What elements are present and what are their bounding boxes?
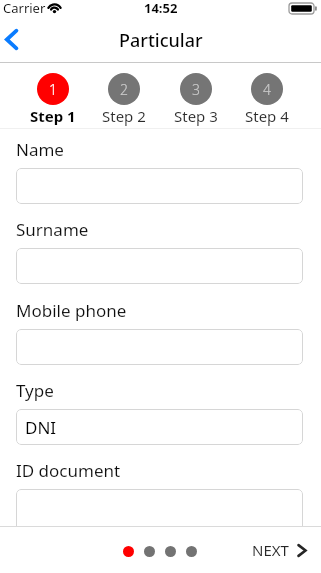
staticText: Type [16, 379, 54, 402]
staticText: NEXT [252, 540, 289, 560]
button[interactable]: 1 [30, 73, 76, 126]
button[interactable]: Go to step 3 [165, 546, 176, 557]
button[interactable]: NEXT [252, 540, 321, 560]
button[interactable]: 4 [245, 73, 289, 126]
staticText: Step 1 [30, 106, 76, 126]
staticText: DNI [25, 416, 57, 439]
staticText: Carrier [3, 0, 46, 17]
staticText: Surname [16, 218, 89, 241]
button[interactable]: DNI [16, 409, 303, 445]
button[interactable] [16, 168, 303, 204]
staticText: Mobile phone [16, 299, 127, 322]
staticText: Step 3 [174, 106, 218, 126]
button[interactable]: Go to step 1 [123, 546, 134, 557]
staticText: 2 [120, 80, 128, 99]
button[interactable] [16, 248, 303, 284]
staticText: Step 2 [102, 106, 146, 126]
button[interactable]: Back [0, 20, 44, 63]
staticText: 1 [49, 80, 57, 99]
staticText: Step 4 [245, 106, 289, 126]
staticText: 14:52 [144, 0, 178, 17]
button[interactable]: Go to step 4 [186, 546, 197, 557]
staticText: Name [16, 138, 64, 161]
button[interactable]: 3 [174, 73, 218, 126]
staticText: 3 [192, 80, 200, 99]
button[interactable]: Go to step 2 [144, 546, 155, 557]
button[interactable] [16, 329, 303, 365]
staticText: Particular [119, 28, 203, 53]
staticText: ID document [16, 459, 121, 482]
staticText: 4 [263, 80, 271, 99]
button[interactable]: 2 [102, 73, 146, 126]
button[interactable] [16, 489, 303, 531]
